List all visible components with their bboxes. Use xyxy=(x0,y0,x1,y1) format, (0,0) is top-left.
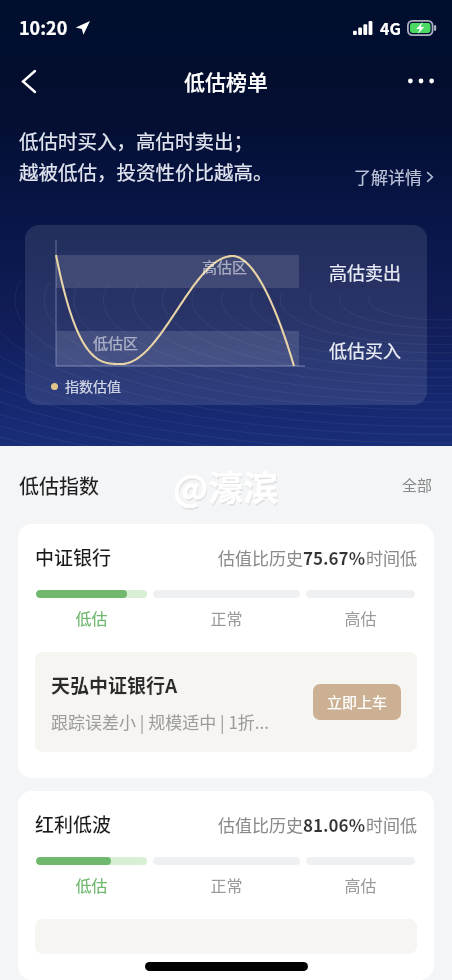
staticText: 低估榜单 xyxy=(184,66,268,96)
button[interactable]: More options xyxy=(398,58,444,104)
staticText: 中证银行 xyxy=(35,543,112,571)
button[interactable]: 天弘中证银行A xyxy=(35,652,417,752)
staticText: 跟踪误差小 | 规模适中 | 1折... xyxy=(51,709,270,734)
staticText: 81.06% xyxy=(303,812,366,837)
staticText: 天弘中证银行A xyxy=(51,671,178,699)
staticText: 正常 xyxy=(153,873,300,896)
staticText: 低估 xyxy=(36,873,147,896)
staticText: 了解详情 xyxy=(354,164,422,189)
staticText: @濠滨 xyxy=(174,462,280,513)
button[interactable]: 中证银行 xyxy=(18,524,434,778)
staticText: 低估买入 xyxy=(329,337,401,363)
staticText: 估值比历史 xyxy=(218,812,303,837)
staticText: 红利低波 xyxy=(35,810,112,838)
button[interactable]: 红利低波 xyxy=(18,791,434,980)
staticText: 低估区 xyxy=(93,332,139,354)
staticText: 低估 xyxy=(36,606,147,629)
staticText: 立即上车 xyxy=(327,691,388,713)
staticText: 4G xyxy=(380,16,401,39)
staticText: 高估 xyxy=(306,606,415,629)
staticText: @濠滨 xyxy=(173,460,279,511)
staticText: 低估指数 xyxy=(19,471,99,500)
button[interactable]: 了解详情 xyxy=(352,160,435,193)
button[interactable]: 立即上车 xyxy=(313,684,401,720)
staticText: 估值比历史 xyxy=(218,545,303,570)
staticText: 高估卖出 xyxy=(329,259,401,285)
staticText: 高估 xyxy=(306,873,415,896)
button[interactable]: Back xyxy=(6,58,52,104)
staticText: 低估时买入，高估时卖出； 越被低估，投资性价比越高。 xyxy=(19,126,273,185)
staticText: 时间低 xyxy=(366,545,417,570)
staticText: 指数估值 xyxy=(65,376,121,396)
staticText: 高估区 xyxy=(202,256,248,278)
staticText: 时间低 xyxy=(366,812,417,837)
staticText: 正常 xyxy=(153,606,300,629)
staticText: 75.67% xyxy=(303,545,366,570)
button[interactable]: 全部 xyxy=(402,474,452,496)
staticText: 10:20 xyxy=(19,14,68,40)
